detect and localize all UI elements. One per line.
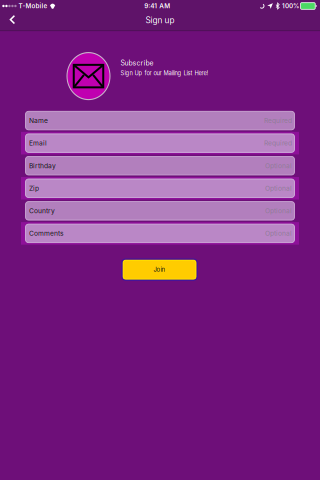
button[interactable]: Name — [21, 109, 299, 132]
staticText: Comments — [29, 229, 64, 237]
staticText: Optional — [265, 207, 292, 215]
staticText: Required — [264, 139, 292, 147]
staticText: Required — [264, 116, 292, 125]
staticText: Optional — [265, 229, 292, 237]
staticText: 9:41 AM — [144, 2, 170, 10]
button[interactable]: Back — [0, 13, 27, 30]
button[interactable]: Email — [21, 132, 299, 154]
staticText: T-Mobile — [18, 2, 47, 10]
staticText: Sign up — [145, 15, 174, 25]
staticText: Zip — [29, 184, 39, 192]
staticText: Optional — [265, 162, 292, 170]
staticText: Join — [154, 266, 166, 273]
staticText: Subscribe — [121, 59, 154, 67]
button[interactable]: Birthday — [21, 154, 299, 177]
staticText: Email — [29, 139, 47, 147]
button[interactable]: Country — [21, 199, 299, 222]
staticText: Optional — [265, 184, 292, 192]
staticText: Sign Up for our Mailing List Here! — [121, 70, 209, 76]
button[interactable]: Comments — [21, 222, 299, 245]
staticText: Birthday — [29, 162, 56, 170]
staticText: 100% — [282, 2, 299, 10]
staticText: Name — [29, 116, 48, 125]
staticText: Country — [29, 207, 55, 215]
button[interactable]: Join — [122, 259, 197, 280]
button[interactable]: Zip — [21, 177, 299, 200]
